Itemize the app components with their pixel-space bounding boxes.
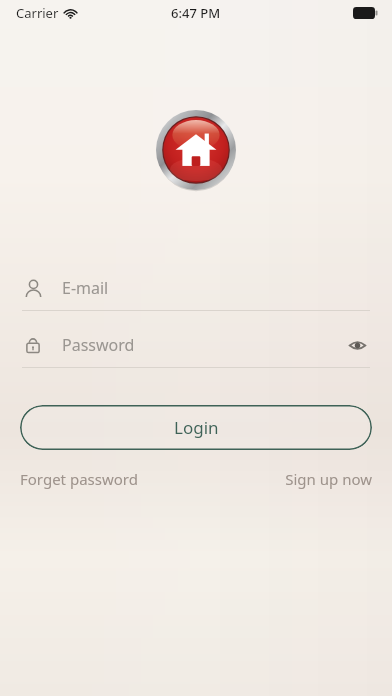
- staticText: Carrier: [16, 4, 59, 22]
- button[interactable]: Sign up now: [283, 463, 374, 495]
- staticText: Forget password: [20, 469, 138, 489]
- staticText: 6:47 PM: [171, 4, 221, 22]
- button[interactable]: Password: [22, 323, 370, 368]
- other: App logo: [156, 110, 236, 190]
- other: Password: [22, 334, 44, 356]
- staticText: Sign up now: [285, 469, 372, 489]
- staticText: Password: [62, 334, 344, 356]
- button[interactable]: Forget password: [18, 463, 140, 495]
- button[interactable]: User: [22, 266, 370, 311]
- button[interactable]: Login: [20, 405, 372, 450]
- staticText: E-mail: [62, 277, 370, 299]
- staticText: Login: [174, 416, 219, 439]
- other: User: [22, 277, 44, 299]
- button[interactable]: Show password: [344, 332, 370, 358]
